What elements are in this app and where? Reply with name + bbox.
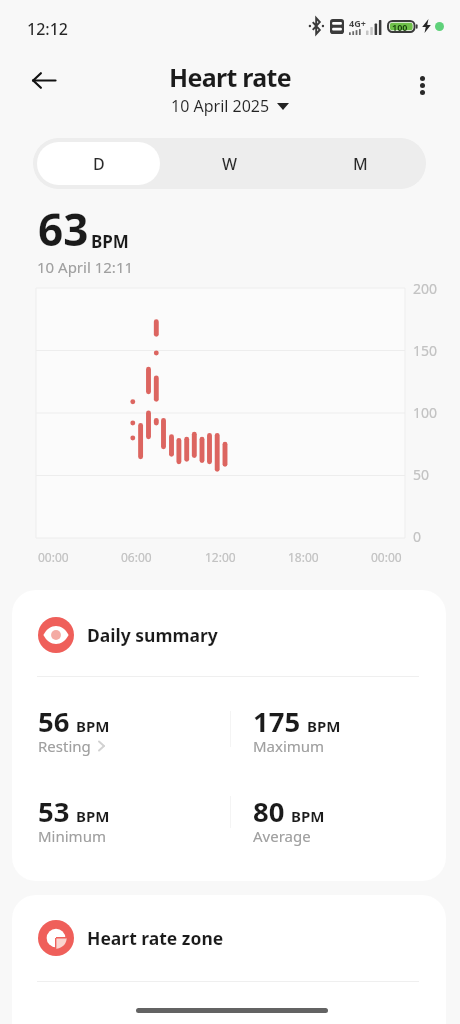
staticText: 18:00 <box>288 549 319 565</box>
button[interactable]: Back <box>20 57 67 104</box>
staticText: M <box>353 153 368 175</box>
staticText: W <box>222 153 238 175</box>
staticText: 150 <box>413 341 438 360</box>
staticText: 80 <box>253 793 285 830</box>
staticText: 00:00 <box>38 549 69 565</box>
button[interactable]: W <box>168 142 291 185</box>
staticText: 0 <box>413 527 422 546</box>
staticText: 06:00 <box>121 549 152 565</box>
staticText: BPM <box>76 806 110 826</box>
staticText: Resting <box>38 736 91 756</box>
staticText: 53 <box>38 793 70 830</box>
staticText: 12:12 <box>27 18 68 40</box>
staticText: BPM <box>76 716 110 736</box>
staticText: BPM <box>91 230 129 253</box>
staticText: 10 April 12:11 <box>37 257 134 277</box>
button[interactable]: Heart rate zone <box>12 895 446 1024</box>
button[interactable]: Daily summary <box>12 590 446 881</box>
button[interactable]: D <box>37 142 160 185</box>
staticText: 200 <box>413 279 438 298</box>
staticText: BPM <box>307 716 341 736</box>
staticText: 10 April 2025 <box>171 95 270 117</box>
staticText: 63 <box>38 199 89 259</box>
staticText: 175 <box>253 703 301 740</box>
staticText: 100 <box>392 21 408 33</box>
staticText: 4G+ <box>349 17 366 29</box>
staticText: 100 <box>413 403 438 422</box>
button[interactable]: More options <box>399 62 446 109</box>
staticText: 00:00 <box>371 549 402 565</box>
staticText: Average <box>253 826 311 846</box>
button[interactable]: M <box>299 142 422 185</box>
staticText: Heart rate zone <box>87 926 224 950</box>
staticText: Daily summary <box>87 623 218 647</box>
staticText: BPM <box>291 806 325 826</box>
staticText: D <box>93 153 105 175</box>
staticText: 56 <box>38 703 70 740</box>
button[interactable]: 10 April 2025 <box>171 95 289 117</box>
staticText: Maximum <box>253 736 325 756</box>
staticText: 12:00 <box>205 549 236 565</box>
staticText: 50 <box>413 465 430 484</box>
staticText: Minimum <box>38 826 106 846</box>
staticText: Heart rate <box>169 60 291 94</box>
